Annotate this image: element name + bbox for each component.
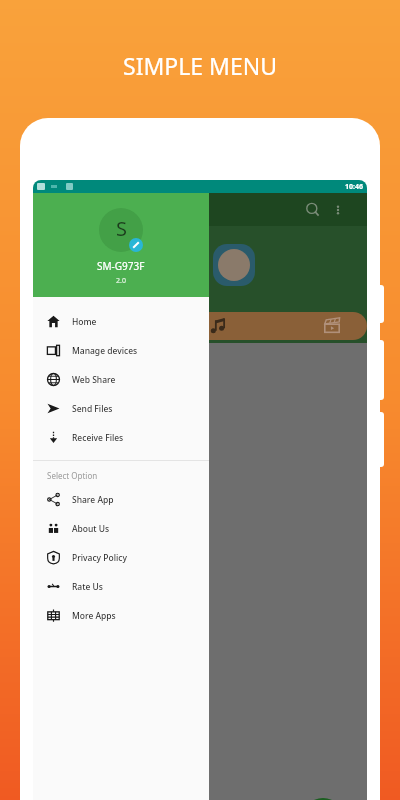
- staticText: SIMPLE MENU: [0, 50, 400, 81]
- staticText: Rate Us: [72, 581, 103, 593]
- button[interactable]: Add: [301, 798, 345, 800]
- button[interactable]: Music: [209, 317, 227, 335]
- button[interactable]: Video: [323, 317, 341, 335]
- staticText: S: [116, 215, 127, 242]
- button[interactable]: Web Share: [33, 365, 209, 394]
- staticText: Receive Files: [72, 432, 124, 444]
- button[interactable]: More options: [329, 201, 347, 219]
- staticText: 2.0: [116, 276, 126, 286]
- button[interactable]: Share App: [33, 485, 209, 514]
- staticText: Select Option: [47, 470, 98, 481]
- staticText: Home: [72, 316, 97, 328]
- staticText: SM-G973F: [97, 259, 145, 273]
- staticText: Web Share: [72, 374, 116, 386]
- staticText: 10:46: [345, 182, 363, 192]
- button[interactable]: Receive Files: [33, 423, 209, 452]
- staticText: More Apps: [72, 610, 116, 622]
- button[interactable]: About Us: [33, 514, 209, 543]
- staticText: Manage devices: [72, 345, 138, 357]
- staticText: Send Files: [72, 403, 113, 415]
- button[interactable]: Manage devices: [33, 336, 209, 365]
- staticText: Share App: [72, 494, 114, 506]
- button[interactable]: Rate Us: [33, 572, 209, 601]
- button[interactable]: Privacy Policy: [33, 543, 209, 572]
- button[interactable]: Edit name: [129, 238, 143, 252]
- button[interactable]: Home: [33, 307, 209, 336]
- button[interactable]: More Apps: [33, 601, 209, 630]
- staticText: Privacy Policy: [72, 552, 127, 564]
- button[interactable]: Search: [303, 200, 323, 220]
- button[interactable]: Send Files: [33, 394, 209, 423]
- staticText: About Us: [72, 523, 110, 535]
